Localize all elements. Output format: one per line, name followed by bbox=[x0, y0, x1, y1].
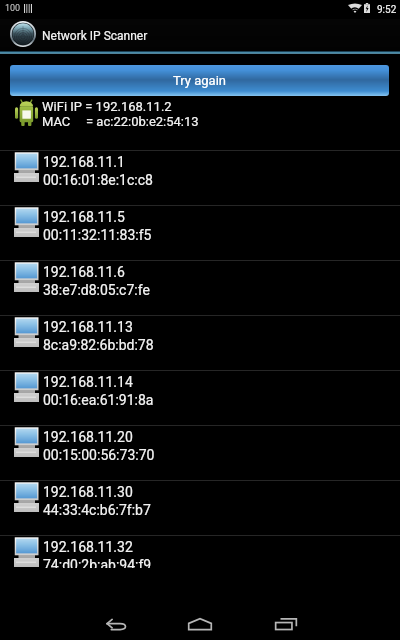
button[interactable]: Home bbox=[175, 604, 225, 640]
staticText: 192.168.11.20 bbox=[43, 429, 133, 445]
staticText: 00:16:ea:61:91:8a bbox=[43, 392, 154, 408]
button[interactable]: 192.168.11.5 bbox=[0, 205, 400, 260]
button[interactable]: 192.168.11.13 bbox=[0, 315, 400, 370]
staticText: = ac:22:0b:e2:54:13 bbox=[86, 114, 199, 129]
staticText: 192.168.11.1 bbox=[43, 154, 125, 170]
staticText: 192.168.11.13 bbox=[43, 319, 133, 335]
staticText: 100 bbox=[5, 3, 21, 14]
staticText: 192.168.11.5 bbox=[43, 209, 125, 225]
staticText: 8c:a9:82:6b:bd:78 bbox=[43, 337, 154, 353]
button[interactable]: 192.168.11.14 bbox=[0, 370, 400, 425]
staticText: 192.168.11.6 bbox=[43, 264, 125, 280]
button[interactable]: 192.168.11.6 bbox=[0, 260, 400, 315]
staticText: 192.168.11.32 bbox=[43, 539, 133, 555]
staticText: 00:16:01:8e:1c:c8 bbox=[43, 172, 153, 188]
button[interactable]: 192.168.11.20 bbox=[0, 425, 400, 480]
staticText: 192.168.11.14 bbox=[43, 374, 133, 390]
button[interactable]: Recents bbox=[261, 604, 311, 640]
button[interactable]: Back bbox=[90, 604, 140, 640]
button[interactable]: 192.168.11.32 bbox=[0, 535, 400, 590]
button[interactable]: 192.168.11.1 bbox=[0, 150, 400, 205]
staticText: 192.168.11.30 bbox=[43, 484, 133, 500]
staticText: MAC bbox=[42, 114, 71, 129]
button[interactable]: Try again bbox=[10, 65, 389, 96]
staticText: 00:11:32:11:83:f5 bbox=[43, 227, 152, 243]
staticText: 74:d0:2b:ab:94:f9 bbox=[43, 557, 152, 573]
staticText: 9:52 bbox=[377, 4, 397, 16]
staticText: Network IP Scanner bbox=[42, 29, 148, 43]
button[interactable]: Network IP Scanner bbox=[0, 19, 400, 52]
staticText: 44:33:4c:b6:7f:b7 bbox=[43, 502, 151, 518]
button[interactable]: 192.168.11.30 bbox=[0, 480, 400, 535]
staticText: Try again bbox=[173, 73, 226, 88]
staticText: WiFi IP = 192.168.11.2 bbox=[42, 99, 172, 114]
staticText: 38:e7:d8:05:c7:fe bbox=[43, 282, 150, 298]
staticText: 00:15:00:56:73:70 bbox=[43, 447, 155, 463]
